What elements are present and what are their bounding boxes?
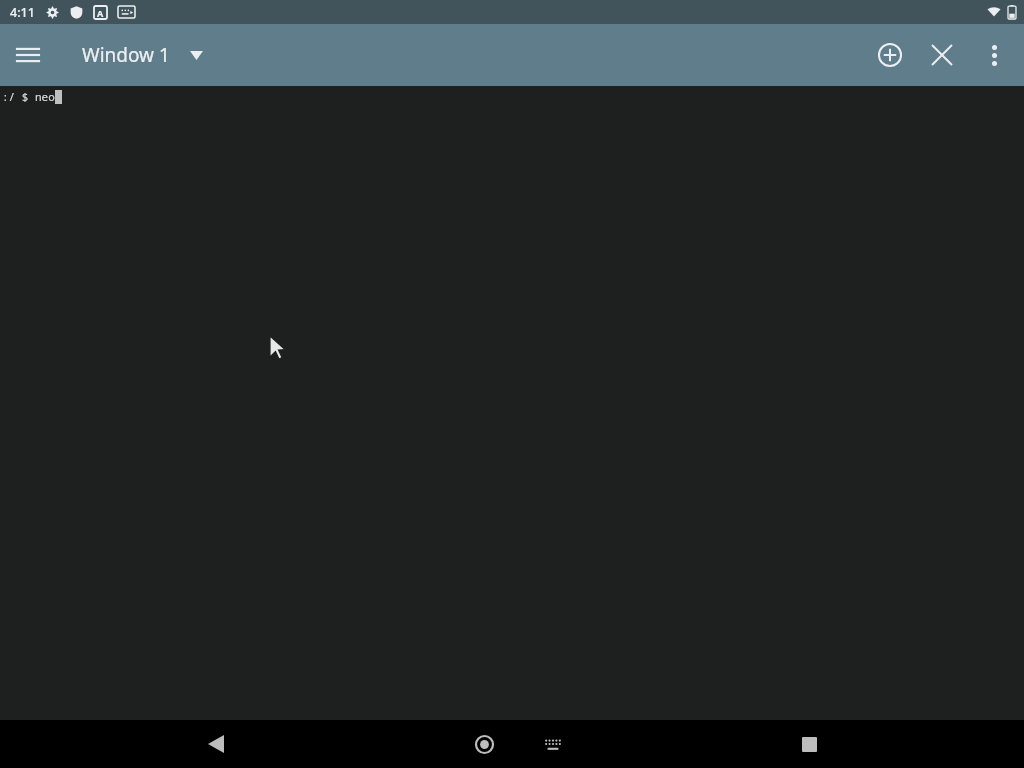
staticText: :/ $ neo [2,89,55,104]
button[interactable]: Recent apps [785,720,833,768]
staticText: Window 1 [82,42,170,68]
button[interactable]: Open navigation drawer [0,27,56,83]
button[interactable]: Close session [916,29,968,81]
button[interactable]: :/ $ neo [0,86,1024,720]
staticText: 4:11 [10,4,35,21]
button[interactable]: Switch keyboard [533,724,573,764]
button[interactable]: Window 1 [82,34,203,76]
button[interactable]: New session [864,29,916,81]
button[interactable]: Back [192,720,240,768]
button[interactable]: More options [968,29,1020,81]
staticText: A [97,7,104,19]
button[interactable]: Home [460,720,508,768]
